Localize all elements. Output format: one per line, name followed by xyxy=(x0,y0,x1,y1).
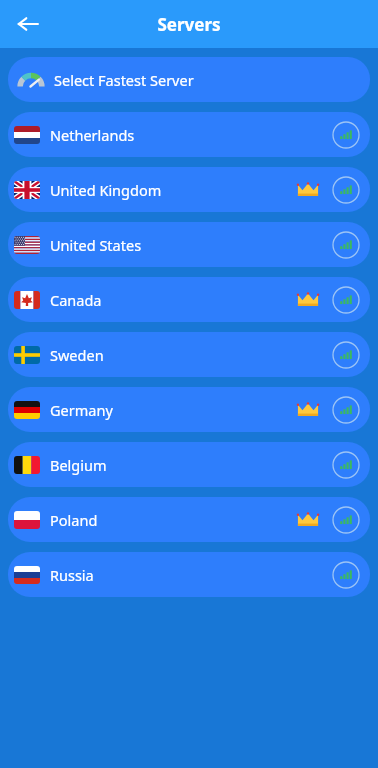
button[interactable]: Sweden xyxy=(8,332,370,377)
button[interactable]: United Kingdom xyxy=(8,167,370,212)
button[interactable]: Netherlands xyxy=(8,112,370,157)
staticText: Canada xyxy=(50,290,102,310)
staticText: Servers xyxy=(157,13,221,36)
staticText: United Kingdom xyxy=(50,180,162,200)
staticText: Netherlands xyxy=(50,125,135,145)
button[interactable]: Belgium xyxy=(8,442,370,487)
staticText: Belgium xyxy=(50,455,107,475)
button[interactable]: Canada xyxy=(8,277,370,322)
staticText: Poland xyxy=(50,510,98,530)
button[interactable]: Back xyxy=(8,4,48,44)
staticText: Germany xyxy=(50,400,113,420)
staticText: Russia xyxy=(50,565,94,585)
button[interactable]: Russia xyxy=(8,552,370,597)
button[interactable]: United States xyxy=(8,222,370,267)
button[interactable]: Germany xyxy=(8,387,370,432)
button[interactable]: Poland xyxy=(8,497,370,542)
staticText: United States xyxy=(50,235,142,255)
button[interactable]: Select Fastest Server xyxy=(8,57,370,102)
staticText: Sweden xyxy=(50,345,104,365)
staticText: Select Fastest Server xyxy=(54,70,194,90)
